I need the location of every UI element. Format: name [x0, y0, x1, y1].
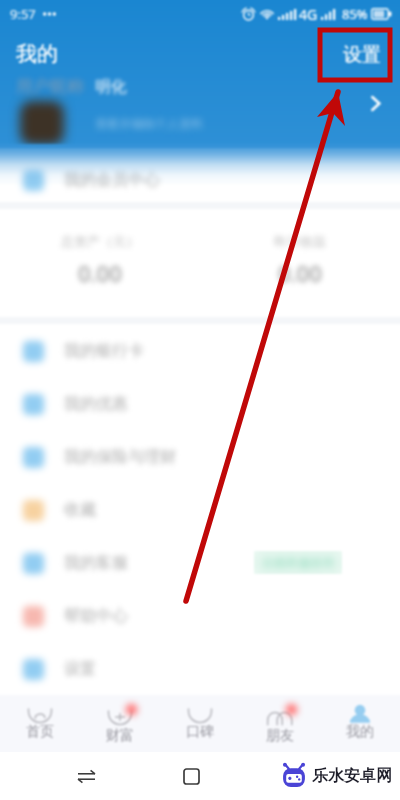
- button[interactable]: 帮助中心: [0, 589, 400, 642]
- staticText: 明化: [95, 77, 127, 97]
- staticText: 朋友: [266, 727, 294, 745]
- button[interactable]: 我的客服: [0, 536, 400, 589]
- button[interactable]: Profile details: [362, 90, 388, 116]
- button[interactable]: 我的会员中心: [0, 158, 400, 202]
- staticText: 我的: [16, 41, 58, 67]
- staticText: 口碑: [186, 723, 214, 741]
- staticText: 0.00: [278, 258, 322, 288]
- staticText: 乐水安卓网: [312, 766, 392, 786]
- staticText: 85%: [342, 5, 368, 23]
- staticText: 9:57: [10, 5, 36, 23]
- button[interactable]: 朋友: [240, 695, 320, 748]
- staticText: 我的会员中心: [64, 170, 160, 190]
- staticText: 我的客服: [64, 553, 128, 573]
- staticText: 查看并编辑个人资料: [95, 116, 203, 131]
- button[interactable]: 用户昵称: [0, 74, 400, 158]
- staticText: 用户昵称: [16, 76, 84, 97]
- staticText: 设置: [343, 43, 381, 67]
- button[interactable]: 总资产（元）: [0, 209, 200, 310]
- button[interactable]: 我的银行卡: [0, 324, 400, 377]
- button[interactable]: Home: [175, 760, 207, 792]
- staticText: 财富: [106, 727, 134, 745]
- button[interactable]: 昨日收益: [200, 209, 400, 310]
- staticText: 设置: [64, 659, 96, 679]
- button[interactable]: Recent apps: [70, 760, 102, 792]
- staticText: 在线客服咨询: [262, 555, 334, 570]
- button[interactable]: 首页: [0, 695, 80, 744]
- staticText: 我的优惠: [64, 394, 128, 414]
- button[interactable]: 收藏: [0, 483, 400, 536]
- button[interactable]: 口碑: [160, 695, 240, 744]
- button[interactable]: 财富: [80, 695, 160, 748]
- button[interactable]: 设置: [0, 642, 400, 695]
- button[interactable]: 我的优惠: [0, 377, 400, 430]
- button[interactable]: 我的保险与理财: [0, 430, 400, 483]
- staticText: 收藏: [64, 500, 96, 520]
- staticText: 我的保险与理财: [64, 447, 176, 467]
- staticText: 我的银行卡: [64, 341, 144, 361]
- staticText: 0.00: [78, 258, 122, 288]
- staticText: 4G: [299, 5, 318, 24]
- staticText: 昨日收益: [274, 233, 326, 249]
- button[interactable]: 设置: [343, 43, 381, 67]
- staticText: 总资产（元）: [61, 233, 139, 249]
- staticText: 首页: [26, 723, 54, 741]
- button[interactable]: 我的: [320, 695, 400, 744]
- staticText: 帮助中心: [64, 606, 128, 626]
- staticText: 我的: [346, 723, 374, 741]
